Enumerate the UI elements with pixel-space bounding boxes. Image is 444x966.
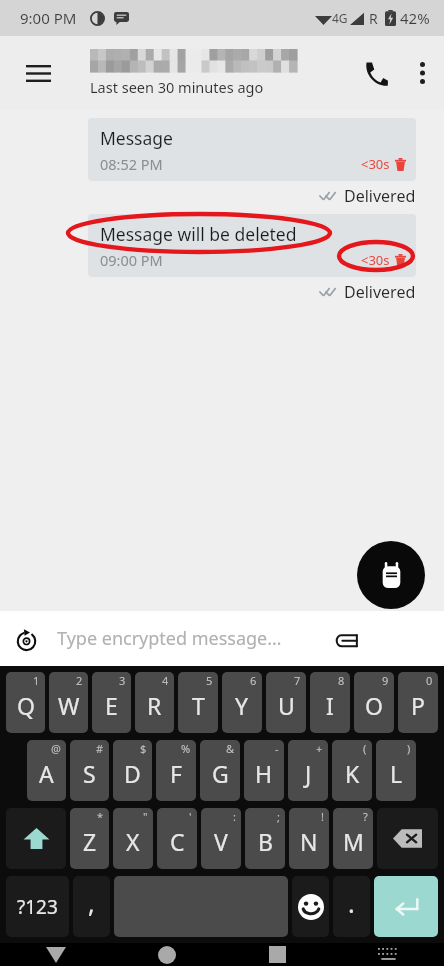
staticText: ( bbox=[363, 741, 367, 756]
staticText: 8 bbox=[338, 673, 345, 688]
staticText: H bbox=[255, 758, 273, 789]
button[interactable]: Push to talk bbox=[357, 541, 425, 609]
staticText: P bbox=[411, 690, 425, 721]
button[interactable]: D bbox=[113, 740, 152, 801]
button[interactable]: E bbox=[92, 672, 131, 733]
staticText: 4G bbox=[332, 10, 348, 26]
button[interactable]: Menu bbox=[14, 49, 62, 97]
staticText: 3 bbox=[119, 673, 126, 688]
staticText: Z bbox=[83, 826, 97, 857]
staticText: W bbox=[58, 690, 80, 721]
button[interactable]: V bbox=[201, 808, 241, 869]
staticText: J bbox=[305, 758, 312, 789]
button[interactable]: Message bbox=[88, 118, 416, 181]
button[interactable]: F bbox=[156, 740, 196, 801]
staticText: 4 bbox=[162, 673, 169, 688]
button[interactable]: W bbox=[49, 672, 88, 733]
staticText: Message bbox=[100, 126, 173, 150]
staticText: 9:00 PM bbox=[20, 8, 77, 28]
button[interactable]: Y bbox=[222, 672, 262, 733]
staticText: G bbox=[212, 758, 229, 789]
staticText: <30s bbox=[361, 155, 390, 173]
button[interactable]: S bbox=[70, 740, 109, 801]
button[interactable]: Switch keyboard bbox=[333, 943, 444, 966]
staticText: % bbox=[181, 741, 191, 756]
staticText: 7 bbox=[294, 673, 301, 688]
staticText: : bbox=[233, 809, 236, 824]
staticText: - bbox=[275, 741, 279, 756]
button[interactable]: Q bbox=[6, 672, 45, 733]
button[interactable]: Z bbox=[70, 808, 109, 869]
staticText: T bbox=[192, 690, 205, 721]
staticText: , bbox=[88, 886, 95, 920]
staticText: V bbox=[214, 826, 228, 857]
staticText: 5 bbox=[206, 673, 213, 688]
staticText: ?123 bbox=[17, 894, 58, 920]
button[interactable]: A bbox=[27, 740, 66, 801]
staticText: 0 bbox=[426, 673, 433, 688]
button[interactable]: Symbols bbox=[6, 876, 69, 937]
button[interactable]: K bbox=[332, 740, 372, 801]
staticText: ) bbox=[407, 741, 411, 756]
button[interactable]: N bbox=[289, 808, 329, 869]
button[interactable]: Comma bbox=[73, 876, 110, 937]
button[interactable]: G bbox=[200, 740, 240, 801]
button[interactable]: Recents bbox=[222, 943, 333, 966]
staticText: 08:52 PM bbox=[100, 154, 163, 174]
button[interactable]: More options bbox=[400, 51, 444, 95]
staticText: C bbox=[170, 826, 185, 857]
button[interactable]: L bbox=[376, 740, 416, 801]
staticText: N bbox=[300, 826, 318, 857]
button[interactable]: M bbox=[333, 808, 373, 869]
staticText: 42% bbox=[400, 8, 430, 28]
staticText: <30s bbox=[361, 251, 390, 269]
staticText: Q bbox=[17, 690, 35, 721]
button[interactable]: Shift bbox=[6, 808, 66, 869]
staticText: & bbox=[226, 741, 235, 756]
staticText: 6 bbox=[250, 673, 257, 688]
button[interactable]: B bbox=[245, 808, 285, 869]
staticText: ? bbox=[363, 809, 368, 824]
staticText: 9 bbox=[382, 673, 389, 688]
staticText: ! bbox=[321, 809, 324, 824]
staticText: A bbox=[39, 758, 54, 789]
staticText: Delivered bbox=[344, 281, 416, 303]
button[interactable]: Home bbox=[111, 943, 222, 966]
button[interactable]: R bbox=[135, 672, 174, 733]
staticText: Last seen 30 minutes ago bbox=[90, 77, 264, 97]
button[interactable]: Enter bbox=[374, 876, 438, 937]
button[interactable]: Emoji bbox=[292, 876, 329, 937]
button[interactable]: O bbox=[354, 672, 394, 733]
staticText: E bbox=[105, 690, 118, 721]
button[interactable]: T bbox=[178, 672, 218, 733]
staticText: ; bbox=[277, 809, 280, 824]
staticText: F bbox=[170, 758, 182, 789]
staticText: Delivered bbox=[344, 185, 416, 207]
button[interactable]: P bbox=[398, 672, 438, 733]
button[interactable]: Backspace bbox=[377, 808, 438, 869]
staticText: R bbox=[147, 690, 162, 721]
staticText: S bbox=[83, 758, 96, 789]
staticText: Message will be deleted bbox=[100, 222, 297, 246]
button[interactable]: J bbox=[288, 740, 328, 801]
staticText: Y bbox=[235, 690, 249, 721]
button[interactable]: Message timer bbox=[4, 617, 48, 661]
button[interactable]: I bbox=[310, 672, 350, 733]
button[interactable]: X bbox=[113, 808, 153, 869]
button[interactable]: U bbox=[266, 672, 306, 733]
staticText: D bbox=[124, 758, 141, 789]
staticText: L bbox=[390, 758, 403, 789]
button[interactable]: C bbox=[157, 808, 197, 869]
staticText: ' bbox=[189, 809, 192, 824]
staticText: B bbox=[258, 826, 273, 857]
button[interactable]: Back bbox=[0, 943, 111, 966]
button[interactable]: Period bbox=[333, 876, 370, 937]
staticText: + bbox=[316, 741, 323, 756]
button[interactable]: Message will be deleted bbox=[88, 214, 416, 277]
button[interactable]: Attach bbox=[325, 618, 367, 660]
staticText: O bbox=[365, 690, 383, 721]
button[interactable]: Call bbox=[350, 48, 400, 98]
staticText: M bbox=[343, 826, 364, 857]
button[interactable]: H bbox=[244, 740, 284, 801]
